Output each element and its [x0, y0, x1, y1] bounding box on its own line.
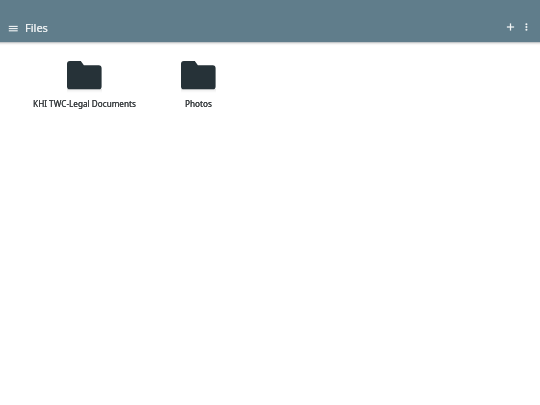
button[interactable]: KHI TWC-Legal Documents	[28, 54, 142, 116]
button[interactable]: Add	[498, 15, 523, 39]
button[interactable]: Photos	[142, 54, 256, 116]
staticText: Photos	[185, 98, 212, 109]
button[interactable]: More options	[514, 15, 539, 39]
staticText: KHI TWC-Legal Documents	[33, 98, 136, 109]
staticText: KHI TWC-Legal Documents	[33, 98, 136, 109]
staticText: Photos	[185, 98, 212, 109]
staticText: Files	[25, 20, 48, 35]
staticText: KHI TWC-Legal Documents	[33, 98, 136, 109]
button[interactable]: Navigation menu	[1, 16, 25, 40]
staticText: Photos	[185, 98, 212, 109]
